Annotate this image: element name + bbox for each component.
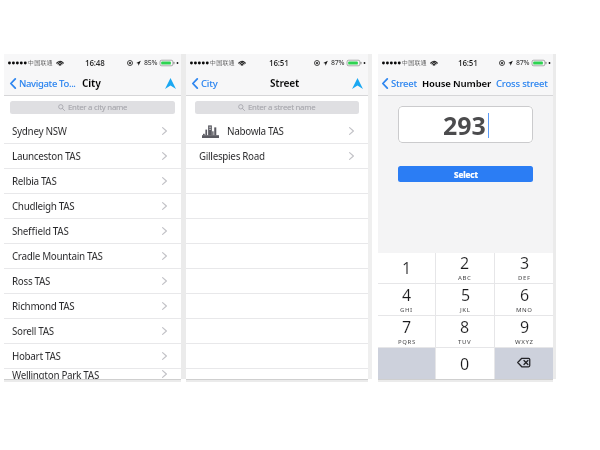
staticText: Hobart TAS [12,350,61,363]
staticText: GHI [400,306,413,314]
staticText: Street [270,76,300,90]
button[interactable]: Launceston TAS [4,144,181,168]
staticText: 87% [331,58,345,68]
button[interactable]: Select [398,166,533,182]
button[interactable]: Hobart TAS [4,344,181,368]
button[interactable]: 3 [495,253,553,283]
button[interactable]: Delete [495,348,553,379]
button[interactable]: Sydney NSW [4,119,181,143]
staticText: 87% [516,58,530,68]
staticText: 85% [144,58,158,68]
button[interactable]: Navigate [165,78,176,89]
staticText: Select [454,169,478,180]
staticText: Wellington Park TAS [12,369,99,379]
staticText: Street [391,77,418,90]
staticText: 7 [402,316,412,338]
button[interactable]: Relbia TAS [4,169,181,193]
staticText: PQRS [398,338,416,346]
button[interactable]: Navigate [352,78,363,89]
button[interactable]: Nabowla TAS [186,119,368,143]
button[interactable]: 9 [495,316,553,347]
staticText: ABC [458,274,472,282]
button[interactable]: 2 [436,253,494,283]
staticText: Enter a city name [68,102,128,113]
button[interactable]: Enter a street name [195,101,359,114]
button[interactable]: Gillespies Road [186,144,368,168]
staticText: City [201,77,218,90]
staticText: Sorell TAS [12,325,54,338]
staticText: Enter a street name [248,102,316,113]
button[interactable]: 293 [398,106,533,143]
staticText: Cradle Mountain TAS [12,250,103,263]
button[interactable]: 8 [436,316,494,347]
staticText: TUV [458,338,472,346]
staticText: 3 [520,252,530,274]
button[interactable]: Cross street [496,77,548,90]
staticText: WXYZ [515,338,534,346]
staticText: House Number [422,77,491,90]
staticText: 16:51 [458,57,478,68]
staticText: 2 [460,252,470,274]
staticText: 16:48 [85,57,105,68]
staticText: Sydney NSW [12,125,67,138]
staticText: 293 [443,108,486,142]
button[interactable]: Wellington Park TAS [4,369,181,379]
button[interactable]: Street [382,77,418,90]
staticText: City [82,76,101,90]
other: Navigate [165,78,176,89]
button[interactable]: 7 [378,316,435,347]
staticText: Navigate To... [19,77,76,90]
button[interactable]: Chudleigh TAS [4,194,181,218]
staticText: 4 [402,284,412,306]
staticText: 16:51 [269,57,289,68]
staticText: 8 [460,316,470,338]
staticText: 6 [520,284,530,306]
staticText: Chudleigh TAS [12,200,75,213]
staticText: 中国联通 [28,59,53,67]
staticText: 1 [402,257,412,279]
button[interactable]: Richmond TAS [4,294,181,318]
staticText: 5 [461,284,471,306]
staticText: 中国联通 [402,59,427,67]
staticText: Ross TAS [12,275,51,288]
staticText: Relbia TAS [12,175,57,188]
staticText: MNO [516,306,533,314]
staticText: Sheffield TAS [12,225,69,238]
staticText: Nabowla TAS [227,125,284,138]
button[interactable]: 6 [495,284,553,315]
staticText: 中国联通 [210,59,235,67]
button[interactable]: Ross TAS [4,269,181,293]
button[interactable]: 4 [378,284,435,315]
other: Navigate [352,78,363,89]
button[interactable]: 0 [436,348,494,379]
staticText: DEF [518,274,531,282]
staticText: Gillespies Road [199,150,265,163]
button[interactable]: Sorell TAS [4,319,181,343]
button[interactable]: Cradle Mountain TAS [4,244,181,268]
staticText: 0 [460,353,470,375]
staticText: 9 [520,316,530,338]
staticText: Launceston TAS [12,150,81,163]
button[interactable]: 1 [378,253,435,283]
button[interactable]: City [192,77,218,90]
button[interactable]: Enter a city name [10,101,175,114]
button[interactable]: Navigate To... [10,77,76,90]
button[interactable]: 5 [436,284,494,315]
staticText: JKL [460,306,471,314]
staticText: Cross street [496,77,548,90]
button[interactable]: Sheffield TAS [4,219,181,243]
staticText: Richmond TAS [12,300,75,313]
